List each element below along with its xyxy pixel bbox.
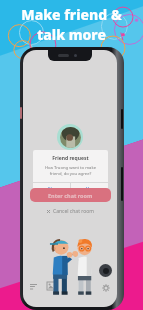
button[interactable]: Enter chat room <box>30 188 111 202</box>
staticText: talk more <box>37 25 106 44</box>
button[interactable]: No <box>33 183 70 195</box>
button[interactable]: Photos <box>45 280 56 291</box>
button[interactable]: Record <box>99 264 112 277</box>
staticText: No <box>48 186 55 193</box>
button[interactable]: Filter <box>28 281 38 291</box>
button[interactable]: Settings <box>100 282 111 293</box>
staticText: Hoa Truong want to make friend, do you a… <box>38 165 103 177</box>
staticText: Yes <box>86 186 94 193</box>
button[interactable]: Cancel chat room <box>46 208 94 215</box>
button[interactable]: Friend request <box>33 150 108 195</box>
staticText: Enter chat room <box>48 192 93 199</box>
staticText: Make friend & <box>21 5 122 24</box>
button[interactable]: Yes <box>71 183 108 195</box>
staticText: Friend request <box>52 155 89 162</box>
staticText: Cancel chat room <box>53 208 94 215</box>
